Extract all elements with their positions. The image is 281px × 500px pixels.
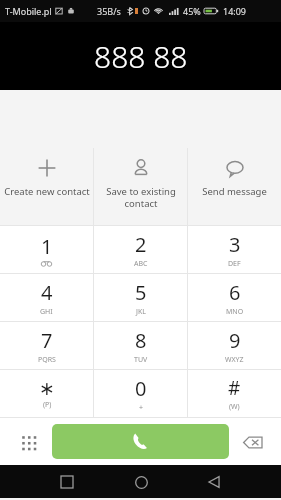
staticText: 8 bbox=[135, 327, 147, 354]
button[interactable]: 5 bbox=[94, 274, 187, 321]
staticText: WXYZ bbox=[225, 355, 244, 365]
staticText: MNO bbox=[226, 307, 244, 317]
staticText: PQRS bbox=[38, 355, 56, 365]
staticText: DEF bbox=[228, 259, 241, 269]
button[interactable]: Recents bbox=[52, 467, 82, 497]
staticText: 9 bbox=[229, 327, 241, 354]
staticText: JKL bbox=[136, 307, 146, 317]
staticText: (P) bbox=[43, 400, 52, 410]
staticText: 0 bbox=[135, 375, 147, 402]
staticText: 3 bbox=[229, 231, 241, 258]
button[interactable]: 4 bbox=[0, 274, 93, 321]
staticText: TUV bbox=[134, 355, 148, 365]
staticText: + bbox=[139, 403, 144, 413]
button[interactable]: 1 bbox=[0, 226, 93, 273]
staticText: # bbox=[228, 375, 241, 401]
button[interactable]: 3 bbox=[188, 226, 281, 273]
staticText: T-Mobile.pl bbox=[5, 5, 52, 17]
staticText: 4 bbox=[41, 279, 53, 306]
staticText: GHI bbox=[40, 307, 53, 317]
staticText: 1 bbox=[41, 233, 53, 260]
staticText: 5 bbox=[135, 279, 147, 306]
button[interactable]: Back bbox=[199, 467, 229, 497]
button[interactable]: 6 bbox=[188, 274, 281, 321]
staticText: 888 88 bbox=[94, 36, 188, 77]
staticText: ∗ bbox=[39, 377, 55, 399]
button[interactable]: Backspace bbox=[235, 424, 271, 460]
staticText: (W) bbox=[229, 402, 240, 412]
button[interactable]: # bbox=[188, 370, 281, 417]
staticText: 14:09 bbox=[223, 5, 247, 17]
button[interactable]: Call bbox=[52, 424, 229, 459]
staticText: Send message bbox=[202, 185, 267, 198]
staticText: 45% bbox=[183, 5, 201, 17]
staticText: 2 bbox=[135, 231, 147, 258]
staticText: Save to existing contact bbox=[106, 185, 176, 210]
staticText: 6 bbox=[229, 279, 241, 306]
button[interactable]: 8 bbox=[94, 322, 187, 369]
button[interactable]: Hide keypad bbox=[10, 424, 46, 460]
staticText: 7 bbox=[41, 327, 53, 354]
button[interactable]: 9 bbox=[188, 322, 281, 369]
staticText: Create new contact bbox=[4, 185, 90, 198]
button[interactable]: 0 bbox=[94, 370, 187, 417]
staticText: 35B/s bbox=[97, 5, 121, 17]
button[interactable]: 7 bbox=[0, 322, 93, 369]
staticText: ABC bbox=[134, 259, 148, 269]
button[interactable]: Send message bbox=[188, 148, 281, 225]
button[interactable]: Create new contact bbox=[0, 148, 93, 225]
button[interactable]: ∗ bbox=[0, 370, 93, 417]
button[interactable]: 2 bbox=[94, 226, 187, 273]
button[interactable]: Save to existing contact bbox=[94, 148, 187, 225]
button[interactable]: Home bbox=[126, 467, 156, 497]
